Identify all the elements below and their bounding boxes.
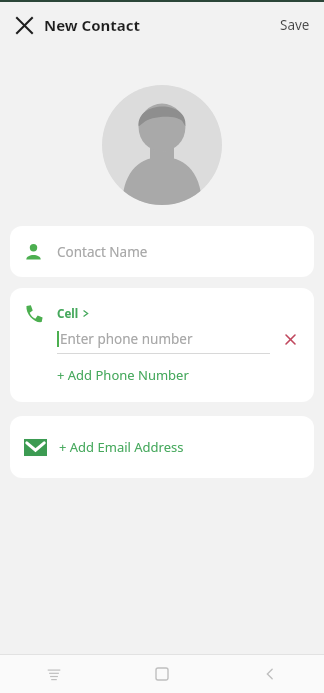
staticText: Enter phone number [60,330,193,348]
button[interactable]: Save [266,8,324,42]
staticText: Save [280,16,310,34]
button[interactable]: Contact Name [10,226,314,277]
button[interactable]: Enter phone number [57,325,193,353]
staticText: + Add Phone Number [57,366,189,384]
button[interactable]: Close [8,9,40,41]
staticText: + Add Email Address [59,438,184,456]
button[interactable]: Cell [10,288,314,325]
staticText: Contact Name [57,243,148,261]
button[interactable]: Clear phone number [280,329,300,349]
button[interactable]: Home [108,655,216,693]
staticText: Cell [57,306,79,322]
button[interactable]: + Add Email Address [10,416,314,478]
button[interactable]: + Add Phone Number [10,354,314,402]
button[interactable]: Recent apps [0,655,108,693]
button[interactable]: Back [216,655,324,693]
staticText: New Contact [44,15,141,35]
button[interactable]: Contact photo [102,85,222,205]
